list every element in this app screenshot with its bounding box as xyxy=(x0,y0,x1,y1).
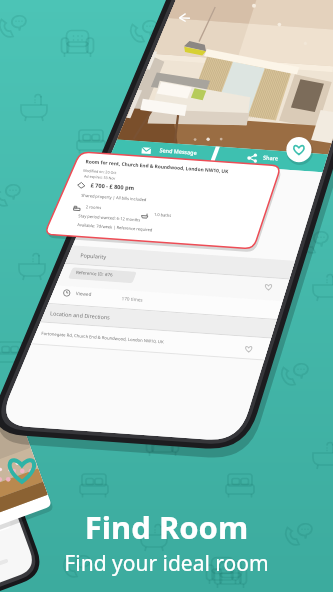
button[interactable]: Find Room xyxy=(0,506,333,578)
staticText: Find your ideal room xyxy=(0,549,333,578)
staticText: Find Room xyxy=(0,506,333,548)
